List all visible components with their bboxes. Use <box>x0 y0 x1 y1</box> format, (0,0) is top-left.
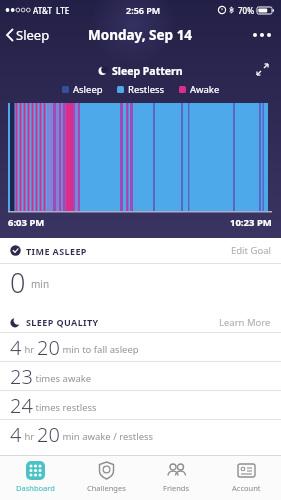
staticText: 6:03 PM <box>8 216 45 229</box>
staticText: hr <box>22 430 37 443</box>
staticText: TIME ASLEEP <box>26 245 87 257</box>
staticText: Awake <box>190 83 220 96</box>
staticText: 70% <box>238 5 254 16</box>
button[interactable]: TIME ASLEEP <box>10 238 271 263</box>
staticText: min to fall asleep <box>60 343 139 356</box>
button[interactable]: 23 <box>10 362 271 390</box>
staticText: 0 <box>10 264 26 296</box>
staticText: times restless <box>33 401 97 414</box>
staticText: Asleep <box>73 83 103 96</box>
button[interactable] <box>253 33 271 37</box>
staticText: 20 <box>37 421 60 448</box>
button[interactable]: Challenges <box>71 456 141 500</box>
button[interactable]: 4 <box>10 420 271 448</box>
staticText: Monday, Sep 14 <box>88 26 193 44</box>
button[interactable]: Dashboard <box>0 456 71 500</box>
staticText: Friends <box>163 483 189 493</box>
button[interactable]: 4 <box>10 333 271 361</box>
staticText: 20 <box>37 334 60 361</box>
staticText: 23 <box>10 363 33 390</box>
staticText: Sleep <box>16 26 50 44</box>
button[interactable] <box>256 63 269 76</box>
staticText: Account <box>232 483 261 493</box>
staticText: 2:56 PM <box>126 4 161 16</box>
staticText: Challenges <box>87 483 126 493</box>
button[interactable]: 24 <box>10 391 271 419</box>
staticText: 10:23 PM <box>230 216 272 229</box>
button[interactable]: Account <box>211 456 281 500</box>
staticText: Edit Goal <box>231 244 271 257</box>
button[interactable]: SLEEP QUALITY <box>10 312 271 332</box>
staticText: SLEEP QUALITY <box>26 316 99 328</box>
staticText: AT&T LTE <box>33 5 70 16</box>
staticText: 4 <box>10 334 22 361</box>
staticText: min <box>31 277 50 291</box>
staticText: times awake <box>33 372 92 385</box>
staticText: hr <box>22 343 37 356</box>
staticText: Restless <box>128 83 165 96</box>
staticText: 24 <box>10 392 33 419</box>
staticText: Sleep Pattern <box>112 64 183 78</box>
staticText: Dashboard <box>16 483 55 493</box>
button[interactable]: Sleep <box>5 26 50 44</box>
button[interactable]: Friends <box>141 456 211 500</box>
staticText: 4 <box>10 421 22 448</box>
staticText: min awake / restless <box>60 430 154 443</box>
staticText: Learn More <box>219 316 271 329</box>
